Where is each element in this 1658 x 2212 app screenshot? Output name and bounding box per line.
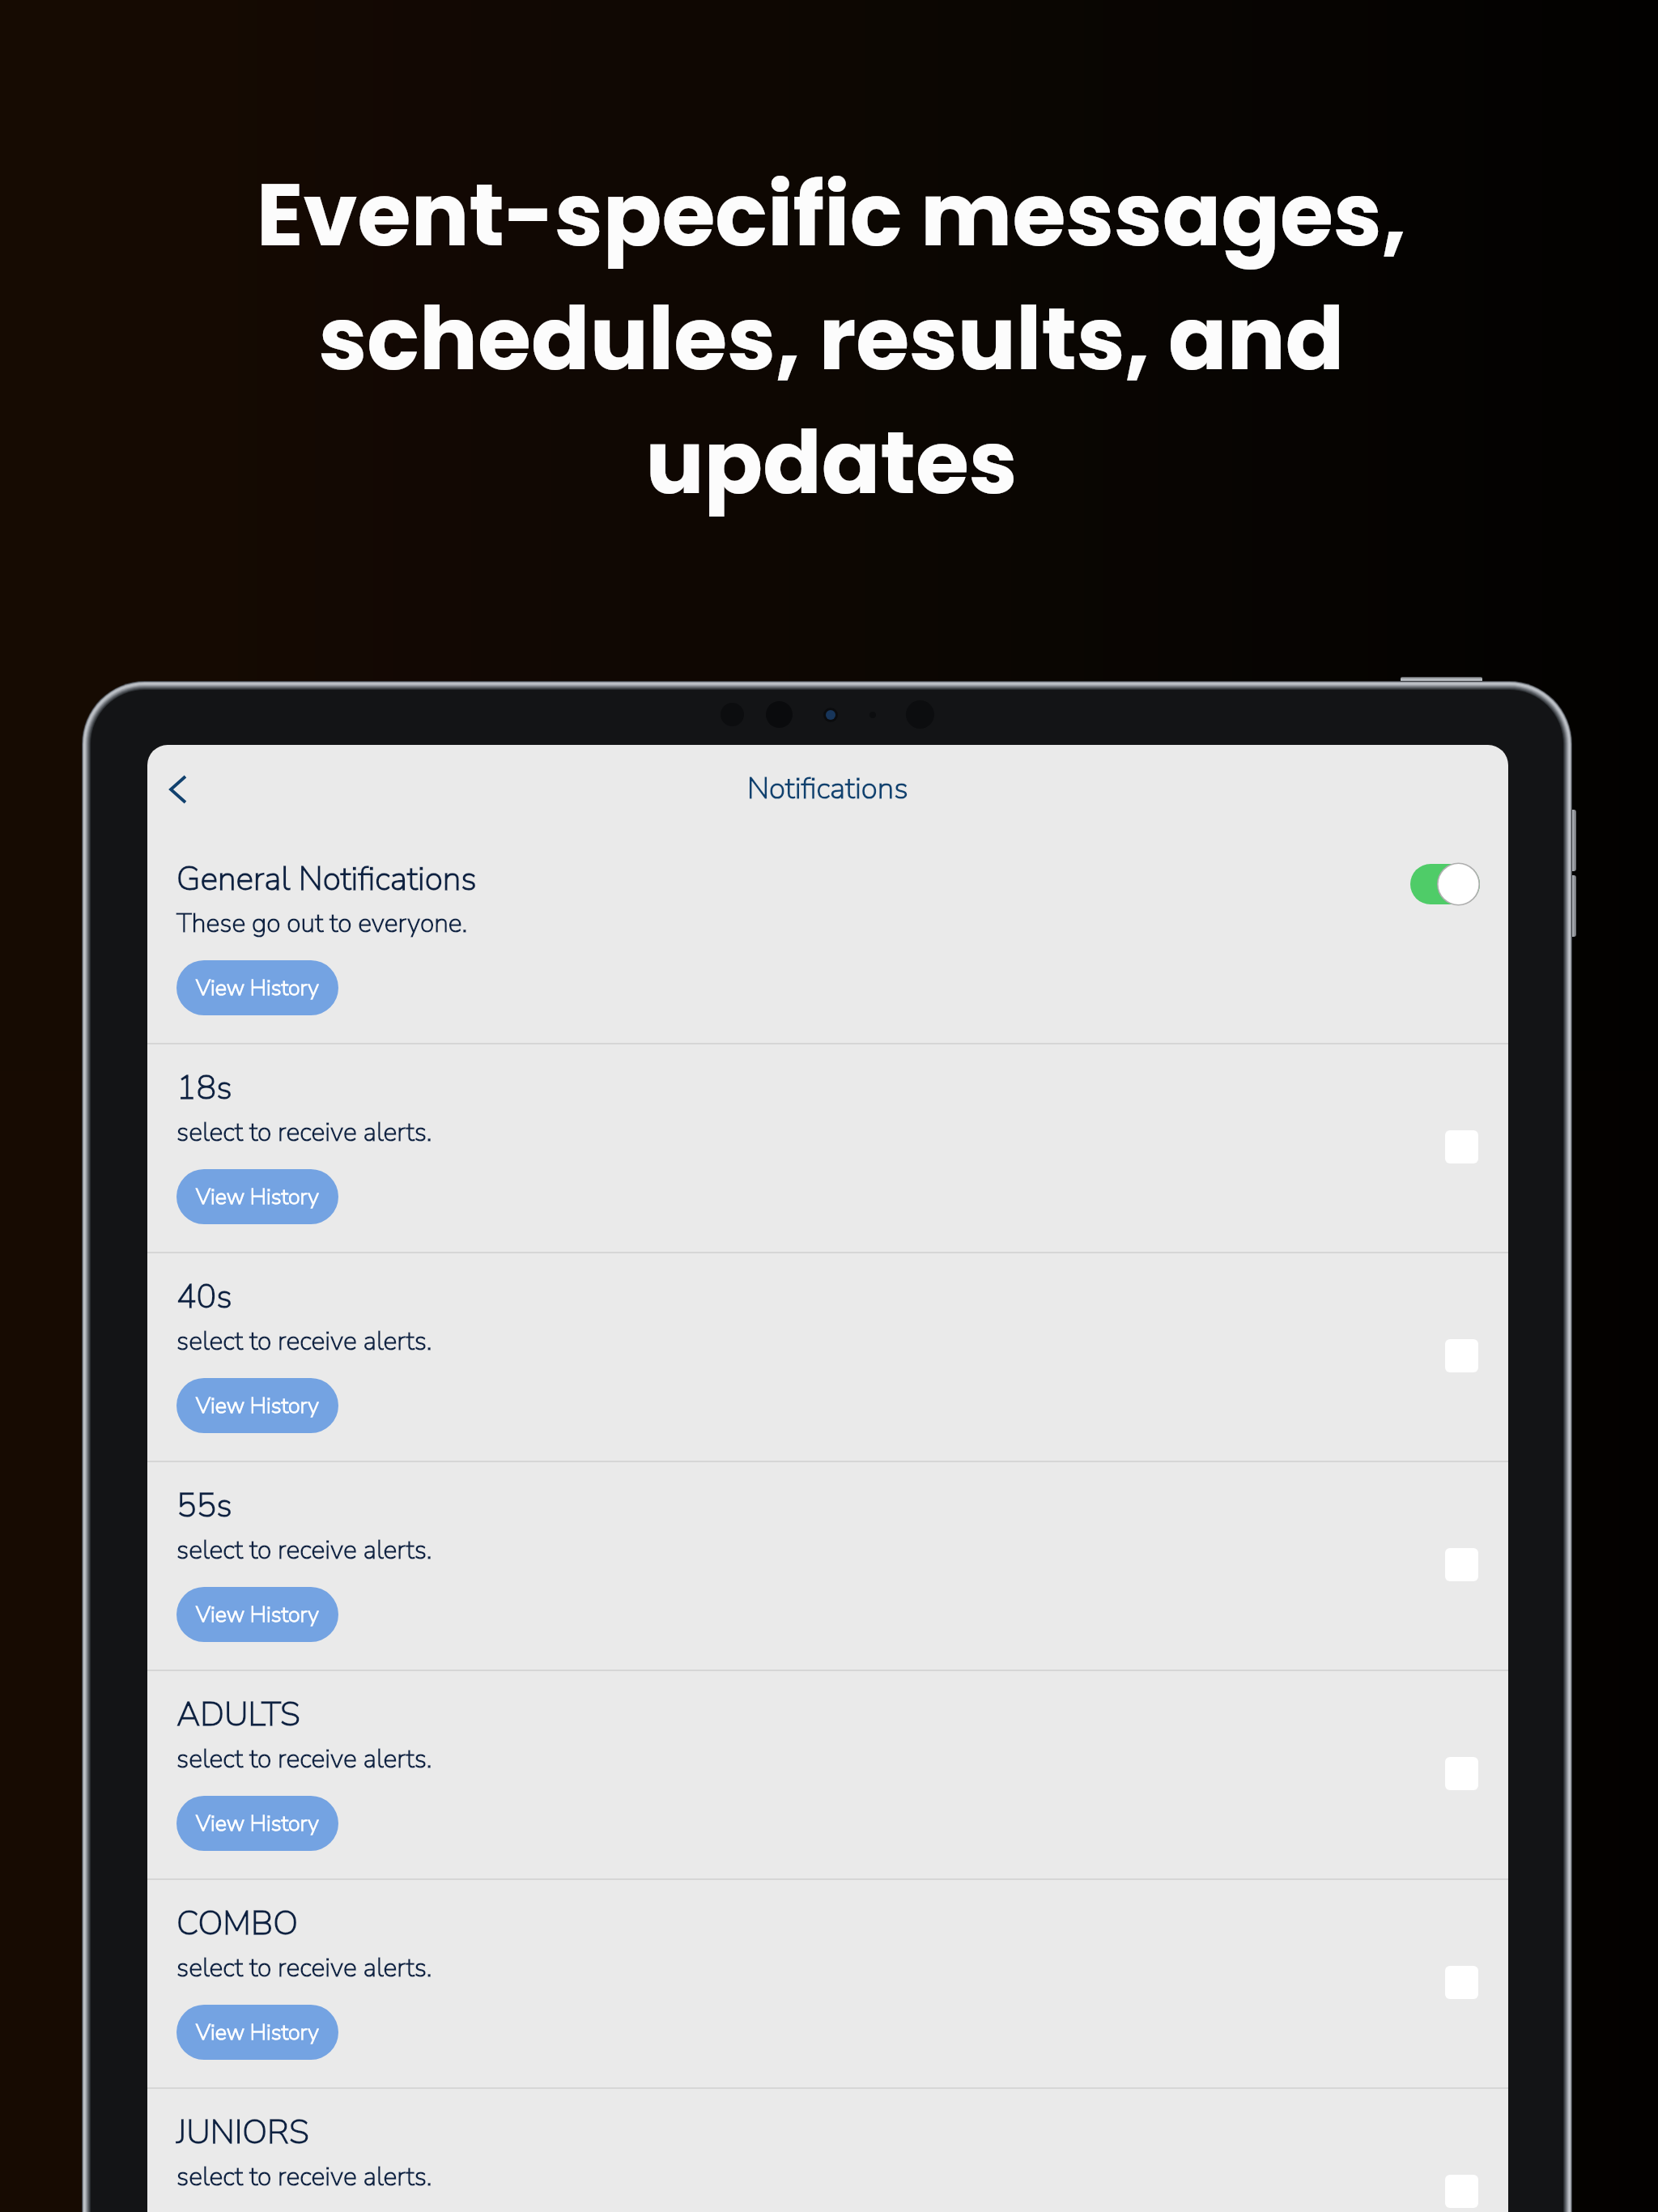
button[interactable]: Select 55s (1445, 1548, 1478, 1581)
staticText: ADULTS (176, 1692, 300, 1738)
button[interactable]: ADULTS (147, 1671, 1508, 1878)
button[interactable]: 55s (147, 1462, 1508, 1670)
staticText: View History (196, 1391, 319, 1421)
staticText: COMBO (176, 1901, 299, 1946)
staticText: Notifications (747, 768, 908, 809)
staticText: View History (196, 1600, 319, 1630)
button[interactable]: Select COMBO (1445, 1966, 1478, 1999)
button[interactable]: Select JUNIORS (1445, 2175, 1478, 2208)
button[interactable]: View History (176, 1796, 338, 1851)
staticText: General Notifications (176, 857, 477, 902)
button[interactable]: JUNIORS (147, 2089, 1508, 2212)
staticText: JUNIORS (176, 2110, 309, 2155)
button[interactable]: View History (176, 960, 338, 1015)
button[interactable]: Select 18s (1445, 1130, 1478, 1163)
staticText: View History (196, 1182, 319, 1212)
staticText: select to receive alerts. (176, 2159, 432, 2195)
button[interactable]: Toggle General Notifications (1410, 862, 1480, 906)
button[interactable]: Back (147, 757, 210, 822)
button[interactable]: View History (176, 1587, 338, 1642)
staticText: View History (196, 973, 319, 1003)
staticText: 55s (176, 1483, 232, 1529)
staticText: select to receive alerts. (176, 1324, 432, 1359)
button[interactable]: View History (176, 2005, 338, 2060)
button[interactable]: COMBO (147, 1880, 1508, 2087)
staticText: 18s (176, 1066, 232, 1111)
button[interactable]: Select ADULTS (1445, 1757, 1478, 1790)
button[interactable]: 18s (147, 1044, 1508, 1252)
staticText: select to receive alerts. (176, 1533, 432, 1568)
staticText: These go out to everyone. (176, 906, 468, 942)
staticText: select to receive alerts. (176, 1115, 432, 1151)
staticText: select to receive alerts. (176, 1742, 432, 1777)
button[interactable]: View History (176, 1169, 338, 1224)
staticText: View History (196, 1809, 319, 1839)
staticText: select to receive alerts. (176, 1950, 432, 1986)
staticText: Event-specific messages, schedules, resu… (83, 155, 1579, 524)
button[interactable]: Select 40s (1445, 1339, 1478, 1372)
button[interactable]: View History (176, 1378, 338, 1433)
button[interactable]: General Notifications (147, 836, 1508, 1043)
staticText: 40s (176, 1274, 232, 1320)
button[interactable]: 40s (147, 1253, 1508, 1461)
staticText: View History (196, 2018, 319, 2048)
